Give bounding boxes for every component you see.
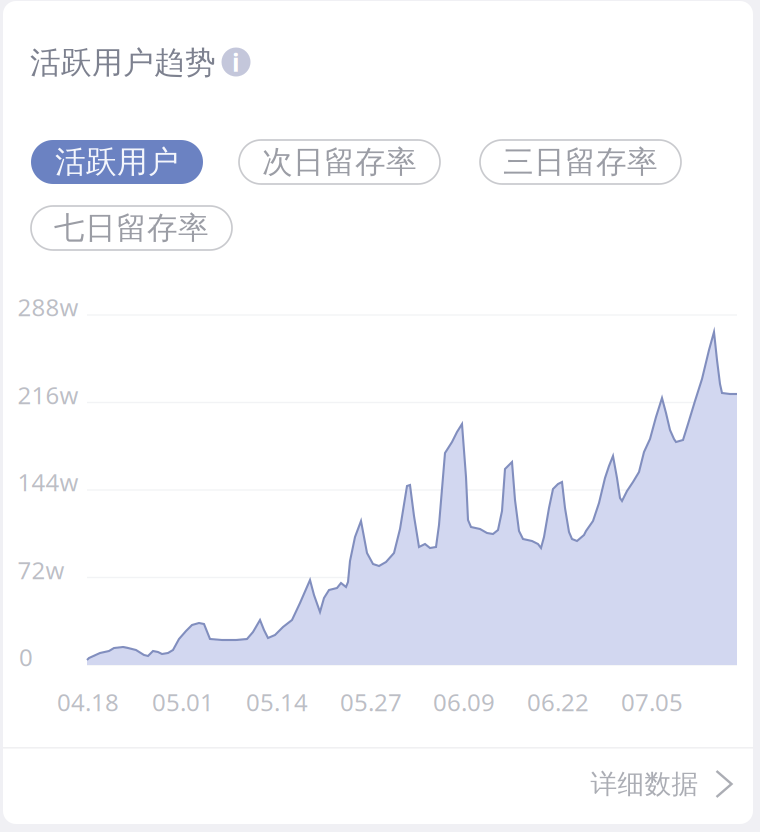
- staticText: 次日留存率: [262, 143, 417, 181]
- staticText: 05.14: [246, 686, 308, 718]
- staticText: 06.22: [527, 686, 589, 718]
- staticText: 三日留存率: [503, 143, 658, 181]
- staticText: 144w: [17, 466, 78, 498]
- staticText: i: [232, 45, 240, 79]
- staticText: 七日留存率: [54, 209, 209, 247]
- staticText: 04.18: [57, 686, 119, 718]
- button[interactable]: 详细数据: [564, 747, 757, 821]
- staticText: 05.27: [340, 686, 402, 718]
- staticText: 07.05: [621, 686, 683, 718]
- staticText: 06.09: [433, 686, 495, 718]
- button[interactable]: 活跃用户: [31, 140, 203, 184]
- staticText: 05.01: [152, 686, 214, 718]
- staticText: 288w: [17, 291, 78, 323]
- staticText: 216w: [17, 379, 78, 411]
- staticText: 活跃用户: [55, 143, 179, 181]
- staticText: 活跃用户趋势: [30, 44, 216, 82]
- button[interactable]: 三日留存率: [480, 140, 681, 184]
- staticText: 72w: [17, 554, 64, 586]
- staticText: 0: [19, 641, 33, 673]
- button[interactable]: 次日留存率: [239, 140, 440, 184]
- staticText: 详细数据: [590, 768, 698, 800]
- button[interactable]: 七日留存率: [31, 206, 232, 250]
